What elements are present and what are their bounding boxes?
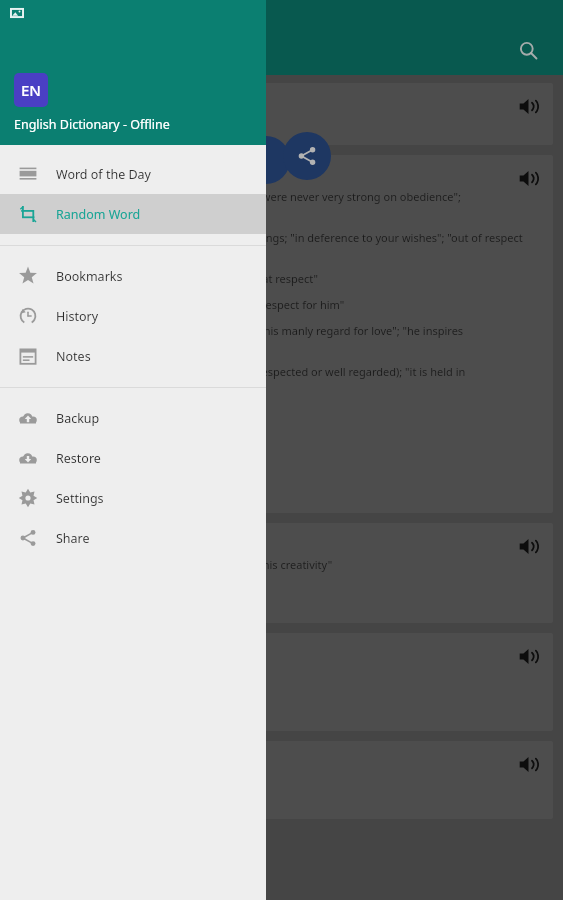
staticText: Backup [56,410,100,427]
staticText: memory" [22,245,71,260]
staticText: English Dictionary - Offline [14,116,170,133]
button[interactable]: Pronounce [511,161,545,195]
staticText: History [56,308,99,325]
staticText: the condition of being honored (esteemed… [22,364,466,379]
staticText: Share [56,530,90,547]
staticText: the condition of being honored; "it diff… [22,271,319,286]
button[interactable]: Bookmark [242,136,290,184]
button[interactable]: Restore [0,438,266,478]
staticText: Settings [56,490,104,507]
staticText: a feeling of friendship and esteem; "he … [22,297,345,312]
staticText: EN [21,80,41,100]
button[interactable]: History [0,296,266,336]
button[interactable]: Share [0,518,266,558]
staticText: Bookmarks [56,268,123,285]
button[interactable]: Pronounce [511,89,545,123]
staticText: "he expected obedience to his father's w… [22,204,262,219]
button[interactable]: Search [507,29,549,71]
button[interactable]: Pronounce [10,83,553,145]
button[interactable]: Word of the Day [0,154,266,194]
button[interactable]: Pronounce [10,741,553,819]
button[interactable]: Bookmarks [0,256,266,296]
staticText: (differential) courteous regard for peop… [22,230,539,245]
button[interactable]: Pronounce [10,633,553,731]
button[interactable]: Pronounce [511,747,545,781]
staticText: an attitude of admiration or esteem; "sh… [22,323,464,338]
staticText: esteem" [22,379,65,394]
button[interactable]: Share [283,132,331,180]
staticText: respect" [22,338,65,353]
staticText: Random Word [56,206,141,223]
staticText: Word of the Day [56,166,151,183]
button[interactable]: Backup [0,398,266,438]
button[interactable]: Pronounce [10,523,553,623]
button[interactable]: Pronounce [511,529,545,563]
button[interactable]: Settings [0,478,266,518]
button[interactable]: Notes [0,336,266,376]
button[interactable]: Pronounce [10,155,553,513]
staticText: Notes [56,348,91,365]
staticText: hold dear; "I prize your judgement"; "We… [22,557,333,572]
staticText: Restore [56,450,101,467]
staticText: the trait of being willing to obey; "her… [22,189,461,204]
button[interactable]: Pronounce [511,639,545,673]
button[interactable]: Random Word [0,194,266,234]
